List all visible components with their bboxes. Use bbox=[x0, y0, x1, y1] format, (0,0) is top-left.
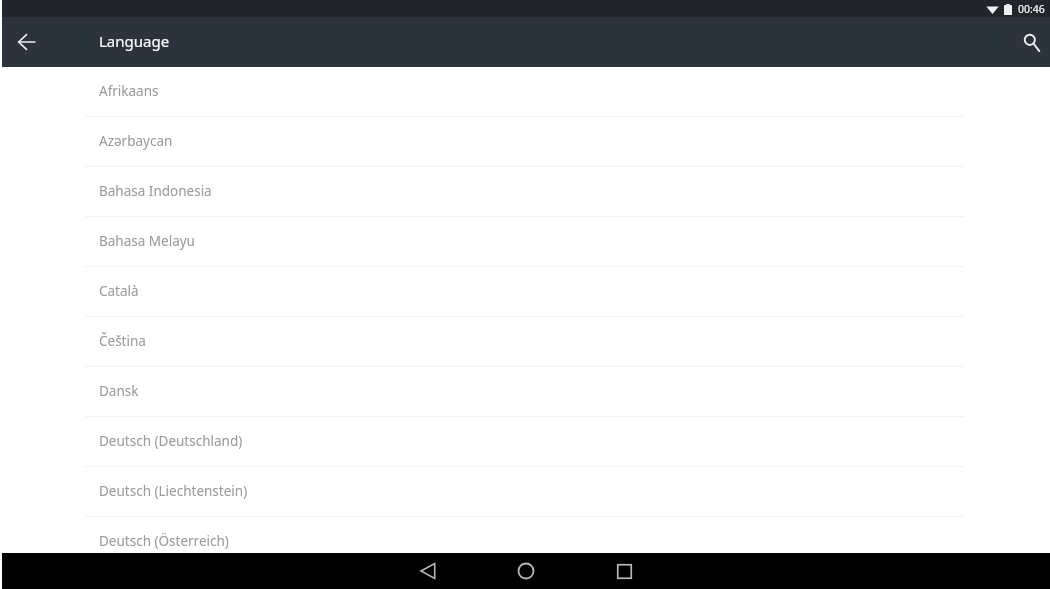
staticText: Deutsch (Österreich) bbox=[99, 532, 229, 550]
button[interactable]: Català bbox=[2, 266, 1050, 316]
staticText: Dansk bbox=[99, 382, 139, 400]
staticText: Language bbox=[99, 31, 170, 51]
button[interactable]: Back bbox=[398, 553, 458, 589]
staticText: Deutsch (Deutschland) bbox=[99, 432, 243, 450]
button[interactable]: Deutsch (Deutschland) bbox=[2, 416, 1050, 466]
button[interactable]: Afrikaans bbox=[2, 67, 1050, 116]
staticText: Azərbaycan bbox=[99, 132, 173, 150]
button[interactable]: Bahasa Indonesia bbox=[2, 166, 1050, 216]
button[interactable]: Deutsch (Österreich) bbox=[2, 516, 1050, 553]
button[interactable]: Search bbox=[1013, 24, 1049, 60]
button[interactable]: Čeština bbox=[2, 316, 1050, 366]
button[interactable]: Recent apps bbox=[594, 553, 654, 589]
staticText: Català bbox=[99, 282, 139, 300]
staticText: Bahasa Indonesia bbox=[99, 182, 212, 200]
staticText: Deutsch (Liechtenstein) bbox=[99, 482, 248, 500]
button[interactable]: Bahasa Melayu bbox=[2, 216, 1050, 266]
button[interactable]: Home bbox=[496, 553, 556, 589]
button[interactable]: Dansk bbox=[2, 366, 1050, 416]
staticText: Čeština bbox=[99, 332, 146, 350]
staticText: Bahasa Melayu bbox=[99, 232, 195, 250]
staticText: 00:46 bbox=[1018, 2, 1045, 16]
button[interactable]: Back bbox=[6, 22, 46, 62]
button[interactable]: Deutsch (Liechtenstein) bbox=[2, 466, 1050, 516]
staticText: Afrikaans bbox=[99, 82, 159, 100]
button[interactable]: Azərbaycan bbox=[2, 116, 1050, 166]
